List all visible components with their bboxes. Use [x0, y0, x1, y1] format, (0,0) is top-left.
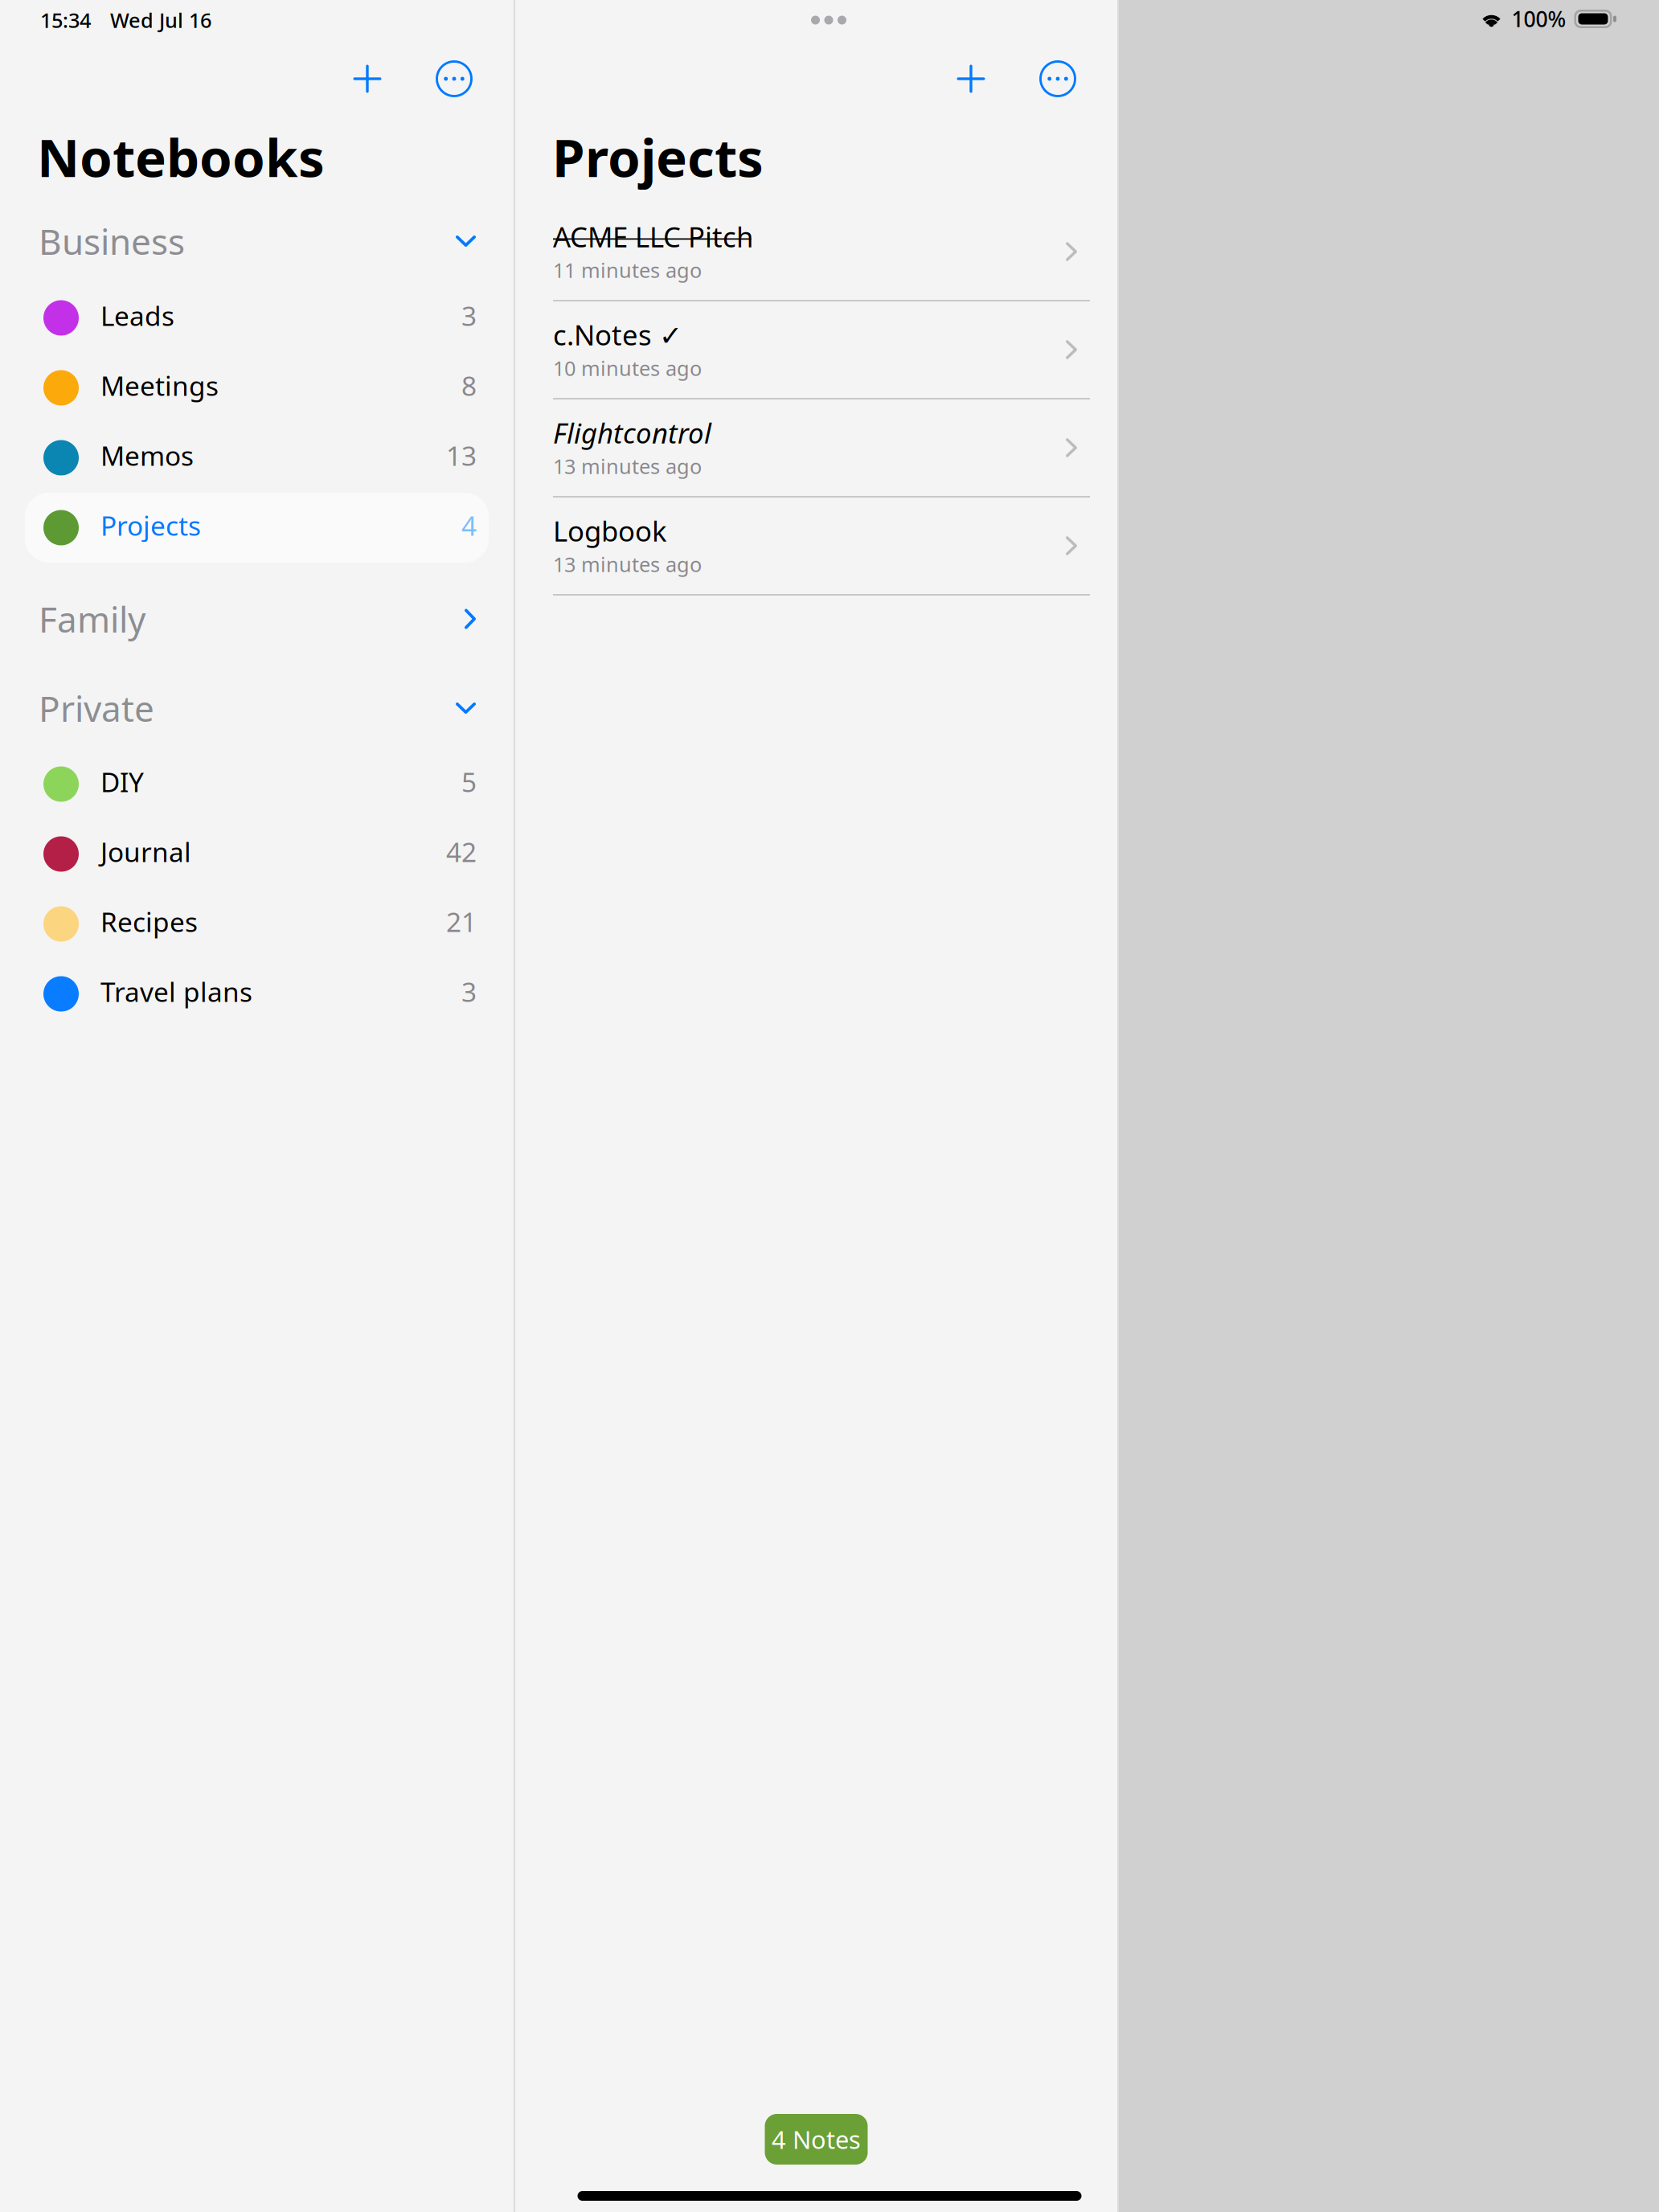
button[interactable]: Meetings	[25, 353, 489, 423]
staticText: 42	[446, 834, 477, 869]
button[interactable]: Leads	[25, 283, 489, 353]
button[interactable]: Memos	[25, 423, 489, 493]
staticText: 8	[461, 368, 477, 403]
staticText: 13	[446, 438, 477, 473]
staticText: Private	[39, 685, 154, 732]
button[interactable]: New notebook	[338, 50, 396, 108]
staticText: Wed Jul 16	[110, 7, 211, 34]
button[interactable]: More options	[425, 50, 483, 108]
button[interactable]: New note	[942, 50, 1000, 108]
staticText: 5	[461, 764, 477, 800]
staticText: Travel plans	[100, 974, 252, 1009]
staticText: DIY	[100, 764, 144, 800]
staticText: Notebooks	[37, 122, 325, 192]
staticText: 21	[446, 904, 477, 939]
button[interactable]: Journal	[25, 819, 489, 889]
staticText: 100%	[1512, 5, 1566, 33]
staticText: ACME LLC Pitch	[553, 218, 753, 255]
button[interactable]: Flightcontrol	[553, 399, 1090, 498]
button[interactable]: Private	[25, 681, 489, 735]
button[interactable]: DIY	[25, 749, 489, 819]
staticText: Leads	[100, 298, 174, 333]
button[interactable]: Recipes	[25, 889, 489, 959]
staticText: 15:34	[40, 7, 91, 34]
staticText: 11 minutes ago	[553, 257, 702, 284]
button[interactable]: Family	[25, 592, 489, 646]
button[interactable]: Logbook	[553, 498, 1090, 596]
staticText: Memos	[100, 438, 194, 473]
staticText: 4	[461, 508, 477, 543]
button[interactable]: More options	[1029, 50, 1087, 108]
button[interactable]: Travel plans	[25, 959, 489, 1029]
staticText: 3	[461, 298, 477, 333]
button[interactable]: Projects	[25, 493, 489, 563]
button[interactable]: c.Notes ✓	[553, 301, 1090, 399]
staticText: Logbook	[553, 512, 667, 549]
staticText: Flightcontrol	[553, 414, 711, 451]
staticText: Family	[39, 595, 145, 642]
staticText: c.Notes ✓	[553, 316, 682, 353]
staticText: 13 minutes ago	[553, 551, 702, 578]
staticText: Recipes	[100, 904, 198, 939]
staticText: Projects	[100, 508, 201, 543]
staticText: Journal	[100, 834, 191, 869]
staticText: Business	[39, 218, 185, 265]
staticText: 4 Notes	[772, 2123, 861, 2156]
button[interactable]: ACME LLC Pitch	[553, 203, 1090, 301]
staticText: 3	[461, 974, 477, 1009]
staticText: Projects	[552, 122, 764, 192]
staticText: 13 minutes ago	[553, 453, 702, 480]
button[interactable]: Business	[25, 214, 489, 268]
staticText: Meetings	[100, 368, 219, 403]
staticText: 10 minutes ago	[553, 355, 702, 382]
